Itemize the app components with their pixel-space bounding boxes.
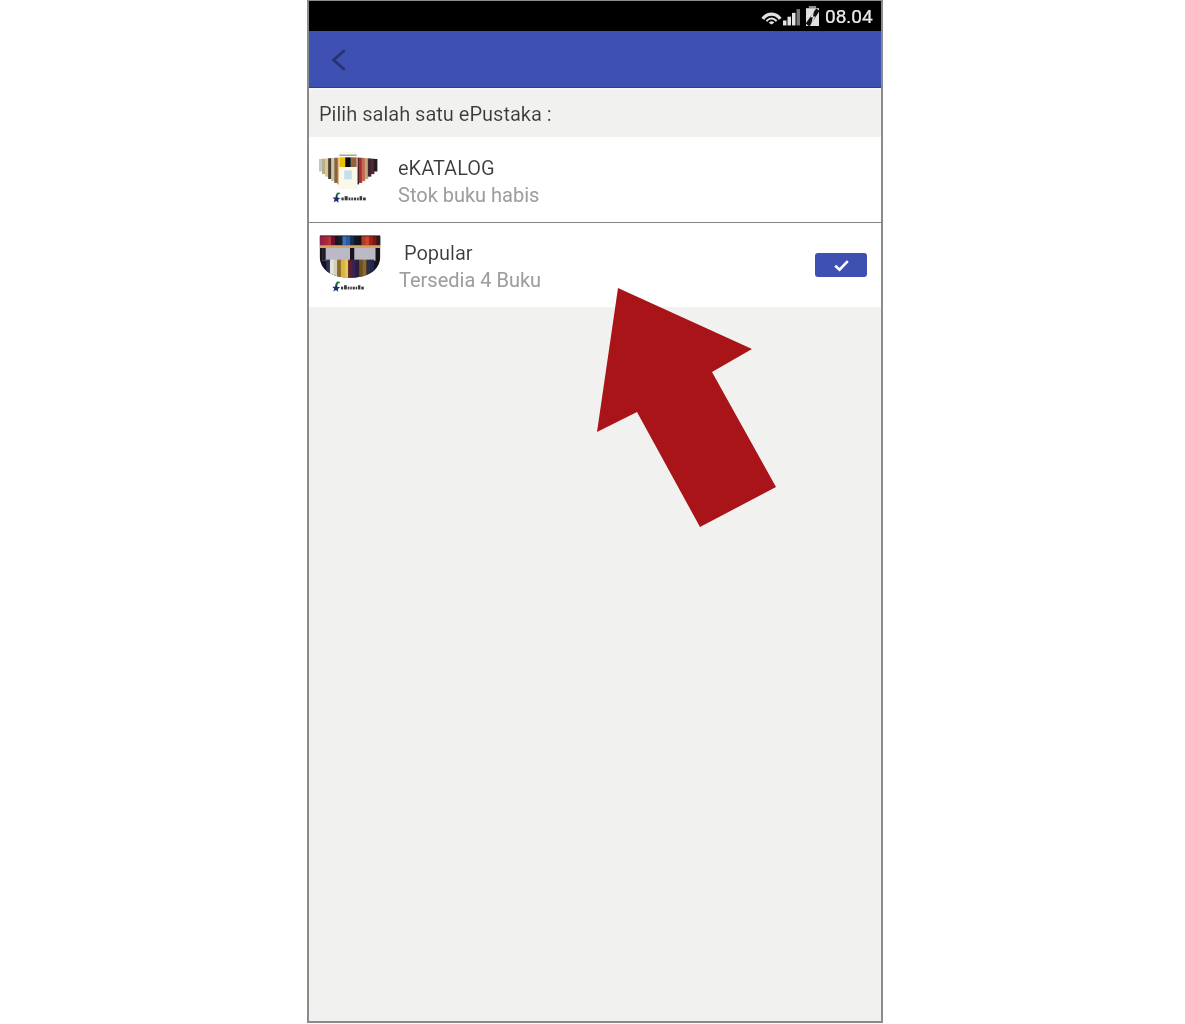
staticText: Pilih salah satu ePustaka : (319, 102, 552, 125)
staticText: Stok buku habis (398, 183, 540, 206)
staticText: 08.04 (825, 5, 873, 27)
button[interactable]: Back (317, 38, 361, 82)
staticText: Tersedia 4 Buku (399, 268, 542, 291)
button[interactable]: eKATALOG (309, 137, 881, 222)
staticText: eKATALOG (398, 156, 495, 179)
button[interactable]: Popular (309, 223, 881, 307)
button[interactable]: Selected (815, 253, 867, 277)
staticText: Popular (399, 241, 473, 264)
